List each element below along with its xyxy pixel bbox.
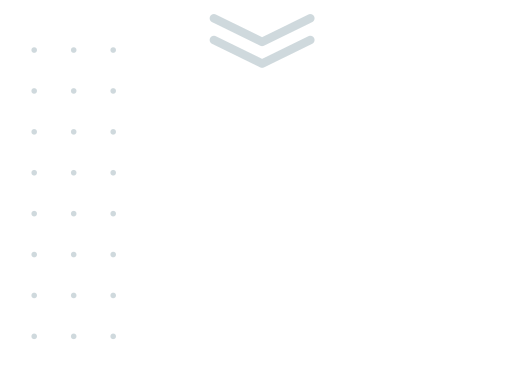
button[interactable]: Scroll down [190, 0, 334, 85]
